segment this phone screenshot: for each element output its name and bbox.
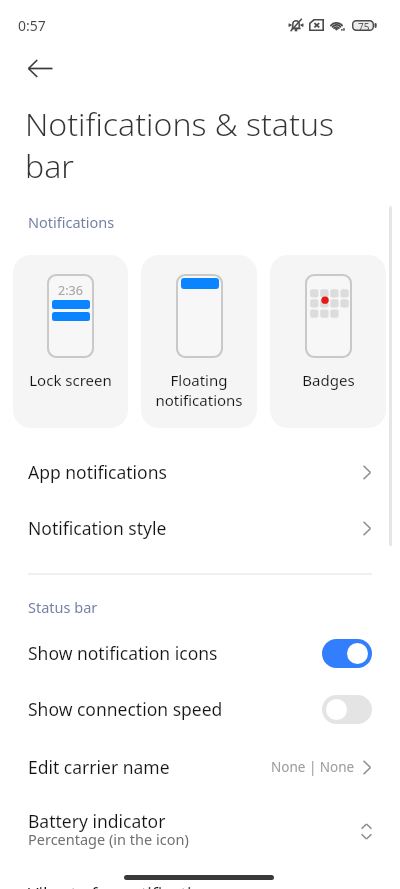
button[interactable]: Notification style [0,500,400,556]
staticText: Show notification icons [28,641,218,665]
staticText: Show connection speed [28,697,223,721]
button[interactable]: App notifications [0,444,400,500]
button[interactable]: 2:36 [13,255,128,428]
staticText: Notifications [28,212,115,232]
staticText: App notifications [28,460,167,484]
staticText: None | None [271,758,355,776]
staticText: Battery indicator [28,809,166,833]
button[interactable]: Battery indicator [0,803,400,859]
button[interactable]: Edit carrier name [0,739,400,795]
button[interactable]: Show connection speed [0,681,400,737]
button[interactable]: Floating notifications [141,255,257,428]
staticText: Notifications & status bar [25,102,357,187]
button[interactable]: Show notification icons [0,625,400,681]
button[interactable]: Back [16,44,64,92]
staticText: 2:36 [58,282,83,299]
staticText: Vibrate for notifications [28,882,222,889]
button[interactable]: Vibrate for notifications [0,866,400,889]
staticText: Notification style [28,516,167,540]
staticText: 0:57 [18,16,46,35]
staticText: Lock screen [29,370,112,390]
staticText: Status bar [28,597,98,617]
staticText: Badges [302,370,355,390]
button[interactable]: Badges [270,255,386,428]
staticText: Floating notifications [155,370,243,410]
staticText: 75 [358,20,370,31]
staticText: Edit carrier name [28,755,170,779]
staticText: Percentage (in the icon) [28,829,189,849]
